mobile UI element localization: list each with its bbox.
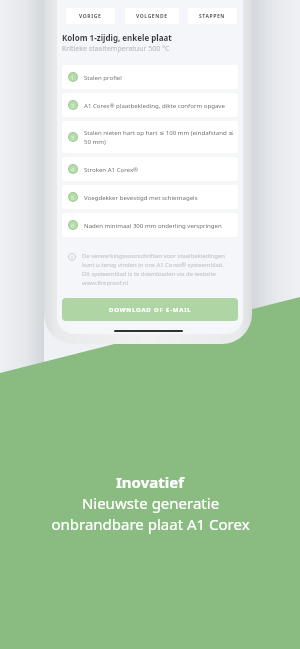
staticText: Voegdekker bevestigd met schietnagels — [84, 193, 198, 201]
staticText: A1 Corex® plaatbekleding, dikte conform … — [84, 101, 225, 109]
button[interactable]: 3 — [62, 121, 238, 153]
staticText: 1 — [71, 74, 75, 81]
staticText: Inovatief — [116, 472, 184, 492]
button[interactable]: 5 — [62, 185, 238, 209]
button[interactable]: VOLGENDE — [125, 8, 179, 24]
staticText: Kritieke staaltemperatuur 500 °C — [62, 44, 170, 54]
staticText: 2 — [71, 102, 75, 109]
staticText: 3 — [71, 134, 75, 141]
button[interactable]: DOWNLOAD OF E-MAIL — [62, 298, 238, 321]
staticText: Kolom 1-zijdig, enkele plaat — [62, 32, 172, 43]
staticText: Naden minimaal 300 mm onderling versprin… — [84, 221, 222, 229]
staticText: Stroken A1 Corex® — [84, 165, 139, 173]
staticText: Nieuwste generatie onbrandbare plaat A1 … — [51, 493, 250, 535]
staticText: 4 — [71, 166, 75, 173]
button[interactable]: 6 — [62, 213, 238, 237]
staticText: De verwerkingsvoorschriften voor staalbe… — [82, 252, 225, 287]
staticText: VORIGE — [79, 13, 102, 20]
button[interactable]: STAPPEN — [188, 8, 237, 24]
staticText: 6 — [71, 222, 75, 229]
staticText: STAPPEN — [199, 13, 226, 20]
button[interactable]: 1 — [62, 65, 238, 89]
staticText: VOLGENDE — [136, 13, 168, 20]
staticText: Stalen nieten hart op hart ≤ 100 mm (ein… — [84, 128, 234, 146]
staticText: Stalen profiel — [84, 73, 122, 81]
button[interactable]: 4 — [62, 157, 238, 181]
staticText: 5 — [71, 194, 75, 201]
button[interactable]: VORIGE — [66, 8, 115, 24]
staticText: DOWNLOAD OF E-MAIL — [109, 306, 192, 314]
button[interactable]: 2 — [62, 93, 238, 117]
